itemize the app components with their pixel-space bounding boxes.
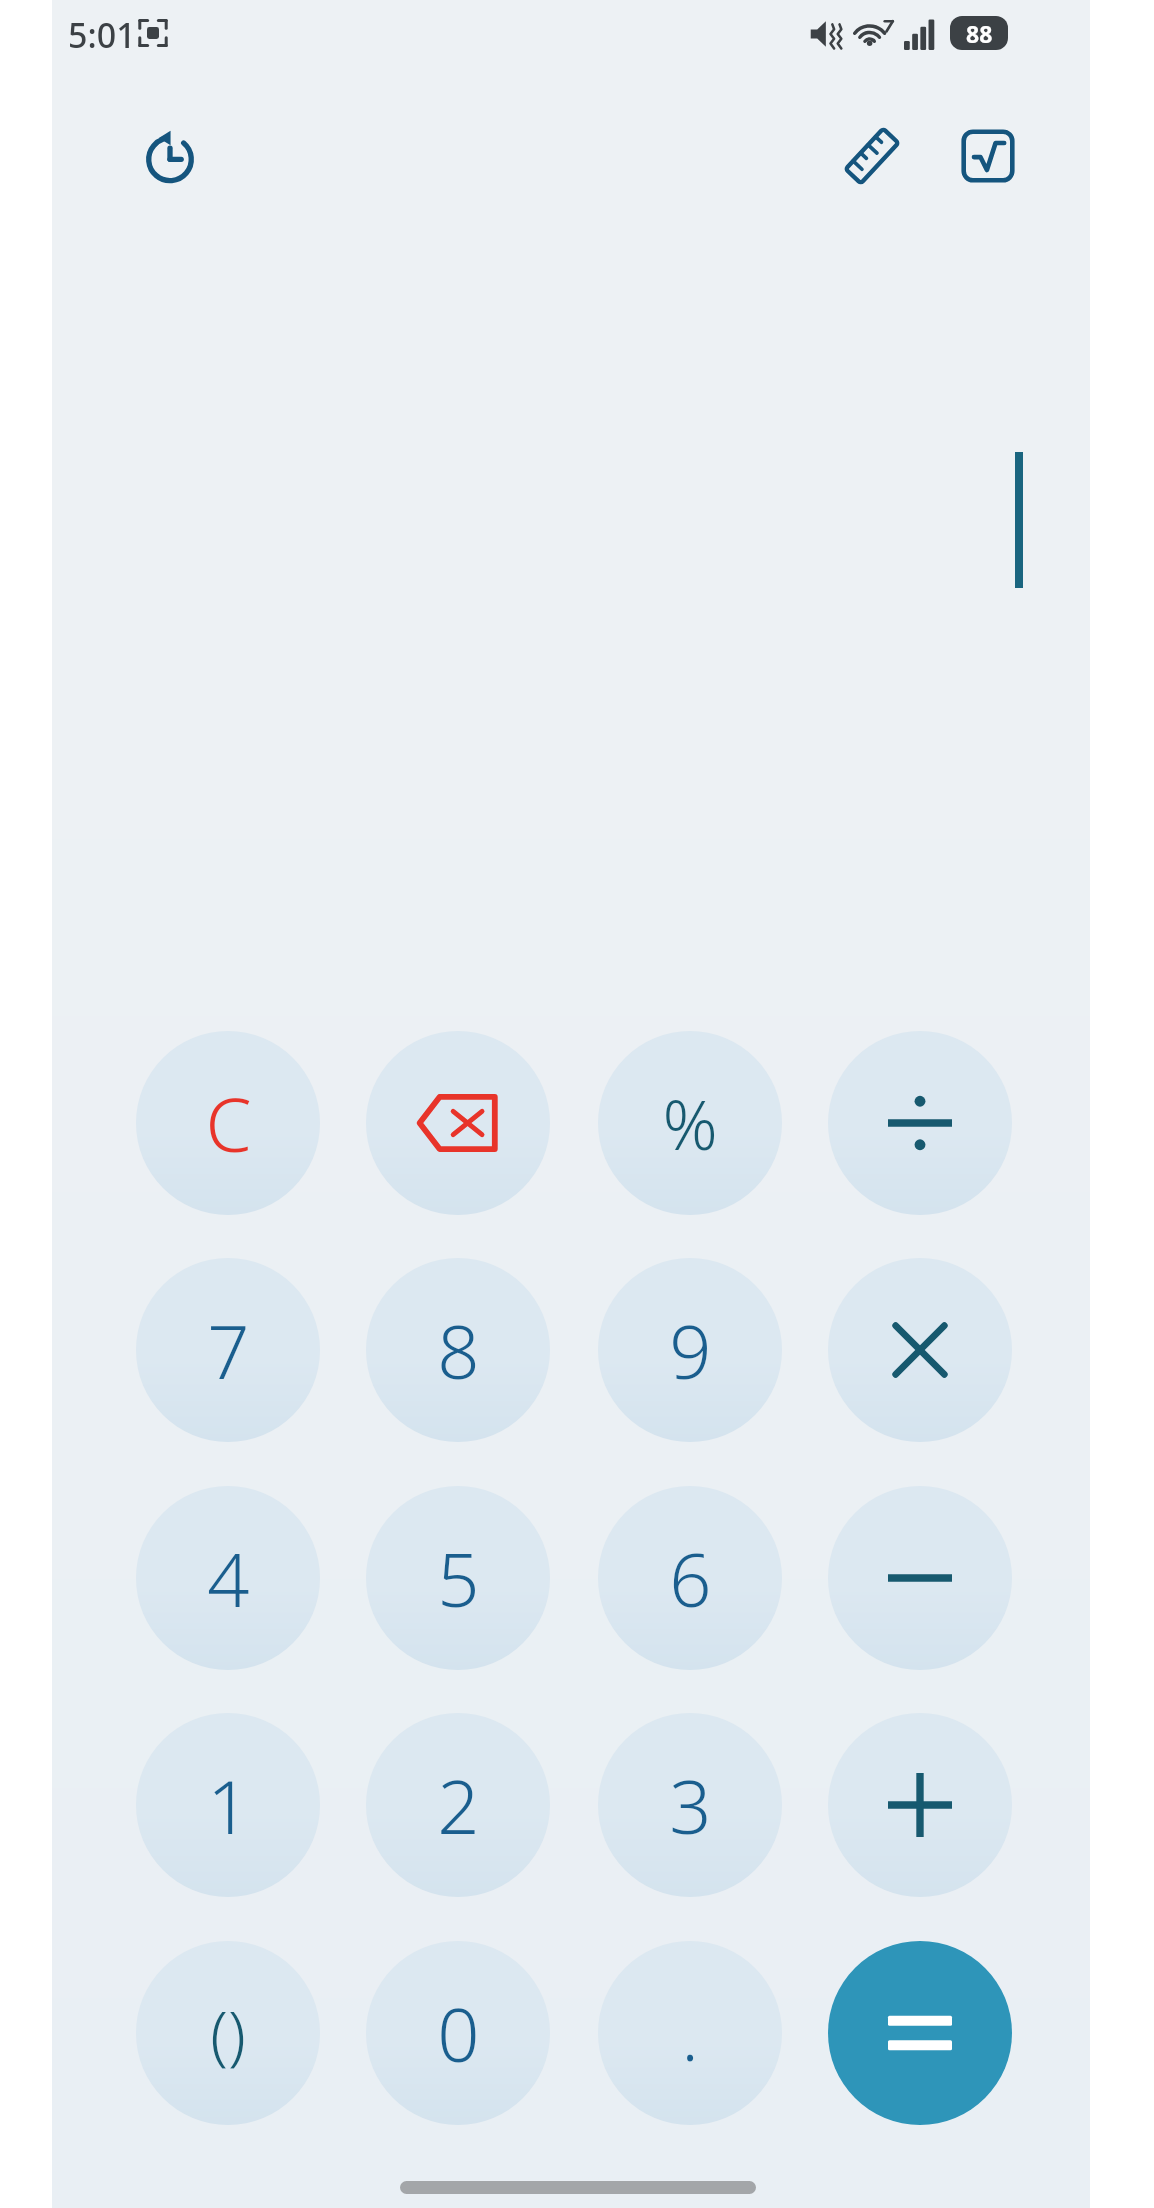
staticText: 4 — [207, 1528, 250, 1629]
button[interactable]: 1 — [136, 1713, 320, 1897]
staticText: 6 — [669, 1528, 712, 1629]
button[interactable]: Scientific mode — [936, 104, 1040, 208]
button[interactable]: Plus — [828, 1713, 1012, 1897]
button[interactable]: C — [136, 1031, 320, 1215]
staticText: 9 — [669, 1300, 712, 1401]
button[interactable]: 9 — [598, 1258, 782, 1442]
button[interactable]: History — [118, 104, 222, 208]
button[interactable]: 3 — [598, 1713, 782, 1897]
button[interactable]: 5 — [366, 1486, 550, 1670]
button[interactable]: Multiply — [828, 1258, 1012, 1442]
staticText: () — [210, 1990, 246, 2077]
button[interactable]: 2 — [366, 1713, 550, 1897]
button[interactable]: Unit converter — [820, 104, 924, 208]
staticText: 7 — [207, 1300, 250, 1401]
staticText: 1 — [207, 1755, 250, 1856]
staticText: C — [205, 1073, 252, 1174]
staticText: % — [662, 1077, 718, 1170]
staticText: 2 — [437, 1755, 480, 1856]
button[interactable]: 4 — [136, 1486, 320, 1670]
staticText: . — [681, 1986, 699, 2081]
button[interactable]: 8 — [366, 1258, 550, 1442]
button[interactable]: Backspace — [366, 1031, 550, 1215]
button[interactable] — [828, 1031, 1012, 1215]
staticText: 3 — [669, 1755, 712, 1856]
staticText: 8 — [437, 1300, 480, 1401]
button[interactable]: Equals — [828, 1941, 1012, 2125]
button[interactable]: Minus — [828, 1486, 1012, 1670]
button[interactable]: () — [136, 1941, 320, 2125]
button[interactable]: 0 — [366, 1941, 550, 2125]
button[interactable]: . — [598, 1941, 782, 2125]
staticText: 88 — [966, 18, 993, 49]
button[interactable]: % — [598, 1031, 782, 1215]
staticText: 5:01 — [68, 12, 136, 58]
staticText: 0 — [437, 1983, 480, 2084]
staticText: 5 — [437, 1528, 480, 1629]
button[interactable]: 6 — [598, 1486, 782, 1670]
button[interactable]: 7 — [136, 1258, 320, 1442]
